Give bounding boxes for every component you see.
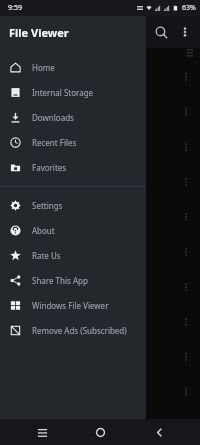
button[interactable]: Item options (176, 347, 196, 367)
button[interactable]: About (0, 218, 146, 243)
staticText: Remove Ads (Subscribed) (32, 325, 127, 336)
button[interactable]: Recent apps (25, 419, 59, 445)
button[interactable]: Item options (176, 137, 196, 157)
staticText: Internal Storage (32, 87, 94, 98)
button[interactable]: Item options (176, 242, 196, 262)
staticText: File Viewer (9, 25, 69, 40)
staticText: Favorites (32, 162, 67, 173)
staticText: Home (32, 62, 55, 73)
button[interactable]: Rate Us (0, 243, 146, 268)
button[interactable]: Remove Ads (Subscribed) (0, 318, 146, 343)
button[interactable]: Item options (176, 277, 196, 297)
staticText: Downloads (32, 112, 74, 123)
button[interactable]: Item options (176, 67, 196, 87)
staticText: Share This App (32, 275, 88, 286)
button[interactable]: Windows File Viewer (0, 293, 146, 318)
button[interactable]: Search (148, 19, 174, 45)
button[interactable]: Internal Storage (0, 80, 146, 105)
staticText: About (32, 225, 55, 236)
button[interactable]: Item options (176, 172, 196, 192)
staticText: 63% (182, 3, 196, 13)
staticText: Rate Us (32, 250, 61, 261)
staticText: 9:59 (8, 3, 22, 13)
button[interactable]: Item options (176, 312, 196, 332)
button[interactable]: Item options (176, 207, 196, 227)
staticText: Windows File Viewer (32, 300, 109, 311)
button[interactable]: Share This App (0, 268, 146, 293)
button[interactable]: Home (83, 419, 117, 445)
button[interactable]: Item options (176, 382, 196, 402)
button[interactable]: Downloads (0, 105, 146, 130)
staticText: Recent Files (32, 137, 77, 148)
button[interactable]: Favorites (0, 155, 146, 180)
button[interactable]: Recent Files (0, 130, 146, 155)
staticText: Settings (32, 200, 63, 211)
button[interactable]: Item options (176, 102, 196, 122)
button[interactable]: Home (0, 55, 146, 80)
button[interactable]: Back (142, 419, 176, 445)
button[interactable]: Settings (0, 193, 146, 218)
button[interactable]: More options (174, 21, 196, 43)
